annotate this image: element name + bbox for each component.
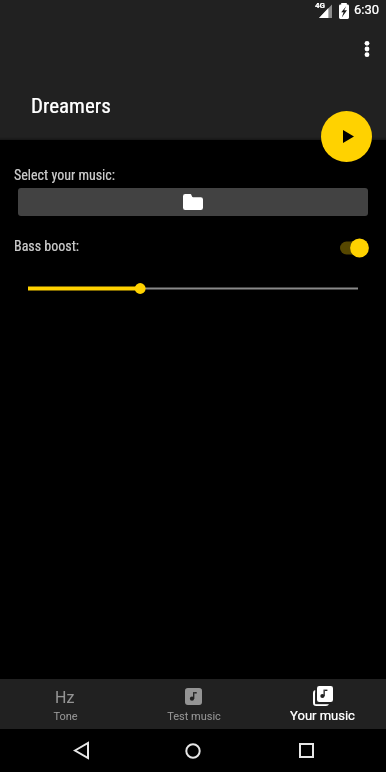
staticText: Tone xyxy=(53,710,78,723)
staticText: Hz xyxy=(55,688,75,704)
staticText: Dreamers xyxy=(31,94,111,119)
staticText: Select your music: xyxy=(14,167,116,183)
button[interactable]: Browse for music xyxy=(18,188,368,216)
button[interactable]: Back xyxy=(59,729,103,772)
button[interactable]: Bass boost level xyxy=(14,276,372,300)
button[interactable]: Your music xyxy=(257,679,386,729)
staticText: Bass boost: xyxy=(14,238,80,254)
button[interactable]: Recent apps xyxy=(284,729,328,772)
button[interactable]: Bass boost switch xyxy=(336,236,380,260)
staticText: Test music xyxy=(167,710,221,723)
button[interactable]: Home xyxy=(171,729,215,772)
button[interactable]: Hz xyxy=(0,679,128,729)
button[interactable]: Test music xyxy=(128,679,257,729)
button[interactable]: Play xyxy=(321,111,372,162)
staticText: 4G xyxy=(315,1,326,10)
staticText: 6:30 xyxy=(354,2,380,17)
staticText: Your music xyxy=(290,708,355,723)
button[interactable]: More options xyxy=(346,28,386,69)
